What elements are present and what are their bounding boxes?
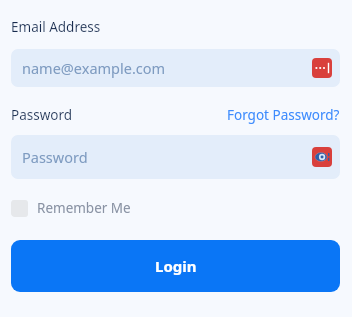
- staticText: Email Address: [11, 18, 101, 36]
- button[interactable]: Remember Me: [11, 199, 137, 217]
- button[interactable]: Password: [11, 135, 340, 179]
- staticText: Remember Me: [37, 199, 131, 217]
- staticText: Password: [11, 106, 73, 124]
- button[interactable]: Forgot Password?: [227, 106, 340, 124]
- button[interactable]: name@example.com: [11, 49, 340, 87]
- staticText: Password: [22, 147, 88, 167]
- button[interactable]: Show password: [312, 147, 332, 167]
- staticText: Forgot Password?: [227, 106, 340, 124]
- button[interactable]: Autofill email: [312, 58, 332, 78]
- staticText: name@example.com: [22, 58, 166, 78]
- button[interactable]: Login: [11, 240, 340, 292]
- staticText: Login: [155, 256, 197, 276]
